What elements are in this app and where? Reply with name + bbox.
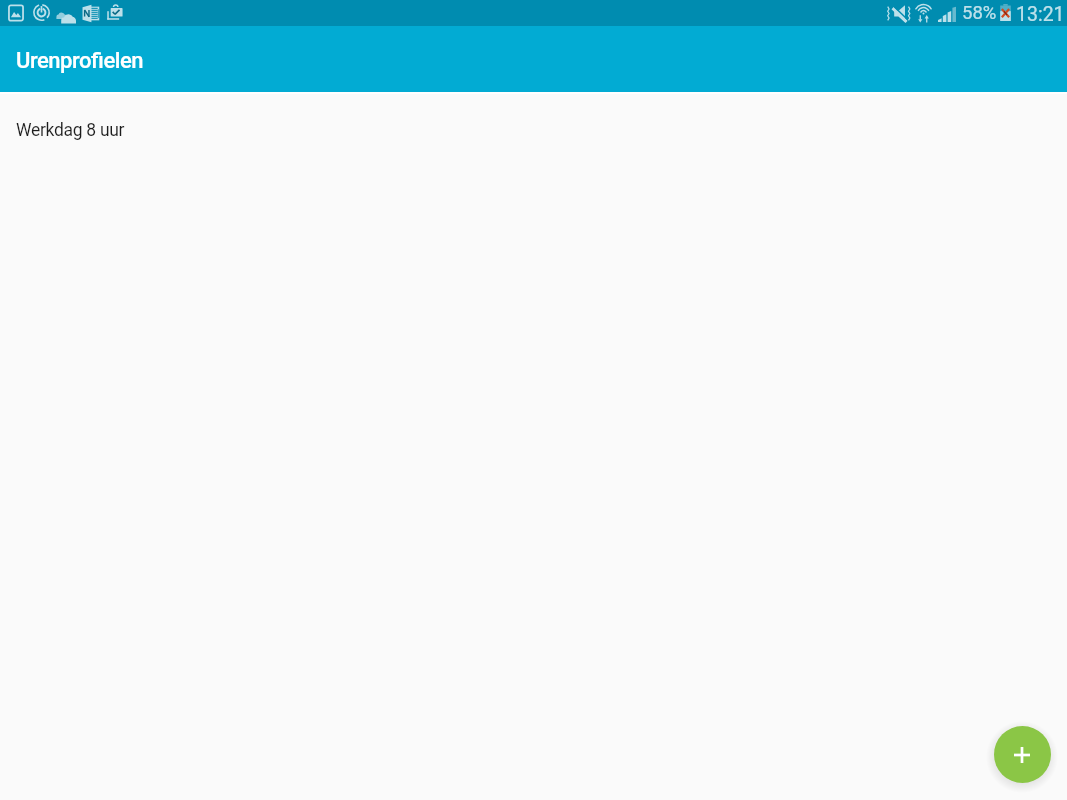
staticText: 58% — [962, 2, 997, 24]
staticText: Urenprofielen — [16, 48, 144, 74]
staticText: Werkdag 8 uur — [16, 120, 125, 141]
button[interactable]: Werkdag 8 uur — [0, 94, 1067, 151]
staticText: 13:21 — [1016, 3, 1065, 26]
button[interactable]: Add — [994, 726, 1051, 783]
